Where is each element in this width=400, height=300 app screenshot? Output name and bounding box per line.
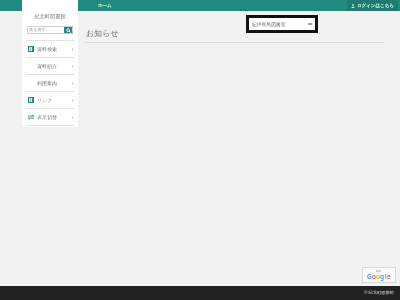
staticText: 表示切替 [37, 114, 57, 120]
staticText: G [367, 272, 372, 281]
button[interactable]: 検索 [64, 26, 73, 34]
button[interactable]: 資料検索 [22, 41, 78, 57]
staticText: e [387, 272, 391, 281]
staticText: 検索 [376, 269, 382, 272]
staticText: 紀北町図書館 [34, 13, 66, 20]
staticText: ホーム [98, 3, 112, 9]
staticText: ログインはこちら [357, 3, 394, 9]
staticText: 本を探す… [29, 27, 50, 33]
button[interactable]: ログインはこちら [347, 0, 398, 11]
staticText: o [372, 272, 376, 281]
button[interactable]: 資料紹介 [22, 58, 78, 74]
staticText: 資料検索 [37, 46, 57, 52]
button[interactable]: ホーム [95, 0, 115, 11]
button[interactable]: Google カスタム検索 [362, 267, 396, 283]
staticText: o [376, 272, 380, 281]
button[interactable]: 利用案内 [22, 75, 78, 91]
staticText: リンク [37, 97, 53, 103]
button[interactable]: リンク [22, 92, 78, 108]
staticText: 利用案内 [37, 80, 57, 86]
staticText: l [385, 272, 387, 281]
staticText: g [380, 272, 385, 281]
staticText: お知らせ [86, 28, 119, 38]
button[interactable]: 紀伊長島図書室 [249, 18, 315, 30]
button[interactable]: 本を探す… [27, 26, 64, 34]
staticText: 紀伊長島図書室 [252, 21, 286, 27]
staticText: © 紀北町図書館 [364, 290, 394, 296]
staticText: 資料紹介 [37, 63, 57, 69]
button[interactable]: 表示切替 [22, 109, 78, 125]
